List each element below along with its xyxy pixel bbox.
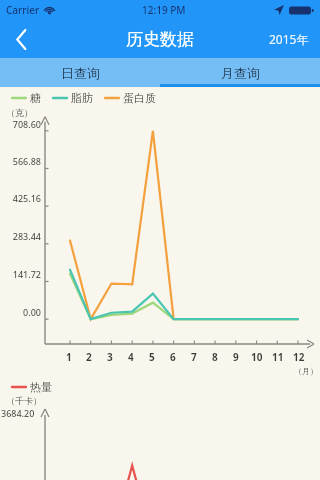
staticText: 7 xyxy=(191,350,197,364)
staticText: 708.60 xyxy=(12,118,41,130)
staticText: （月） xyxy=(294,366,318,376)
staticText: 糖 xyxy=(30,91,41,105)
staticText: （千卡） xyxy=(6,395,42,406)
staticText: Carrier xyxy=(6,3,40,17)
staticText: 9 xyxy=(233,350,239,364)
staticText: 12 xyxy=(293,350,305,364)
staticText: 425.16 xyxy=(12,192,41,204)
button[interactable]: 日查询 xyxy=(0,58,160,87)
staticText: 热量 xyxy=(30,380,52,394)
staticText: 3684.20 xyxy=(1,407,35,419)
staticText: 2015年 xyxy=(269,31,309,47)
staticText: 5 xyxy=(149,350,155,364)
staticText: 蛋白质 xyxy=(123,91,156,105)
staticText: 脂肪 xyxy=(71,91,93,105)
button[interactable]: Back xyxy=(0,20,42,58)
staticText: 10 xyxy=(251,350,263,364)
staticText: 8 xyxy=(212,350,218,364)
staticText: 3 xyxy=(107,350,113,364)
staticText: 日查询 xyxy=(61,65,100,81)
staticText: 141.72 xyxy=(12,268,41,280)
button[interactable]: 2015年 xyxy=(258,20,320,58)
staticText: 12:19 PM xyxy=(142,3,186,17)
button[interactable]: 月查询 xyxy=(160,58,320,87)
staticText: 0.00 xyxy=(23,306,41,318)
staticText: 月查询 xyxy=(221,65,260,81)
staticText: 历史数据 xyxy=(126,29,194,50)
staticText: （克） xyxy=(6,107,33,118)
staticText: 283.44 xyxy=(12,230,41,242)
staticText: 11 xyxy=(272,350,284,364)
staticText: 4 xyxy=(128,350,134,364)
staticText: 566.88 xyxy=(12,155,41,167)
staticText: 6 xyxy=(170,350,176,364)
staticText: 1 xyxy=(66,350,72,364)
staticText: 2 xyxy=(86,350,92,364)
